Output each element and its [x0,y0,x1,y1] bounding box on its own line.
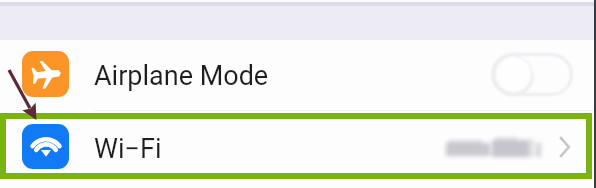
staticText: Wi−Fi [94,133,162,165]
button[interactable]: Airplane Mode switch, off [491,53,573,96]
staticText: Airplane Mode [94,60,269,92]
button[interactable]: Wi−Fi [0,114,596,179]
button[interactable]: Airplane Mode [0,39,596,109]
